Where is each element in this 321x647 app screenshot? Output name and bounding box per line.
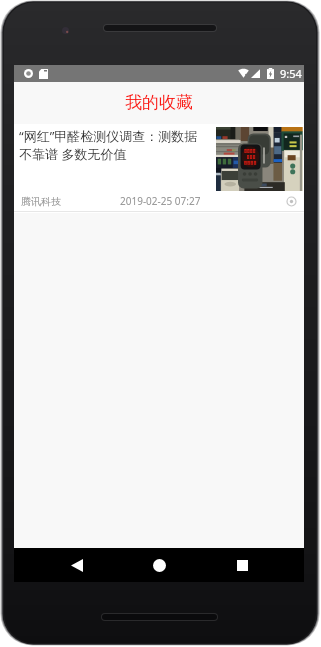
staticText: 我的收藏 xyxy=(125,92,193,113)
staticText: 腾讯科技 xyxy=(21,195,61,208)
button[interactable]: More options xyxy=(283,193,299,209)
button[interactable]: Recent apps xyxy=(222,548,262,582)
staticText: “网红”甲醛检测仪调查：测数据 xyxy=(19,127,198,145)
staticText: 9:54 xyxy=(280,66,302,81)
button[interactable]: Back xyxy=(57,548,97,582)
button[interactable]: Home xyxy=(139,548,179,582)
staticText: 2019-02-25 07:27 xyxy=(120,194,201,208)
staticText: 不靠谱 多数无价值 xyxy=(19,145,127,163)
button[interactable]: “网红”甲醛检测仪调查：测数据 xyxy=(14,124,304,213)
